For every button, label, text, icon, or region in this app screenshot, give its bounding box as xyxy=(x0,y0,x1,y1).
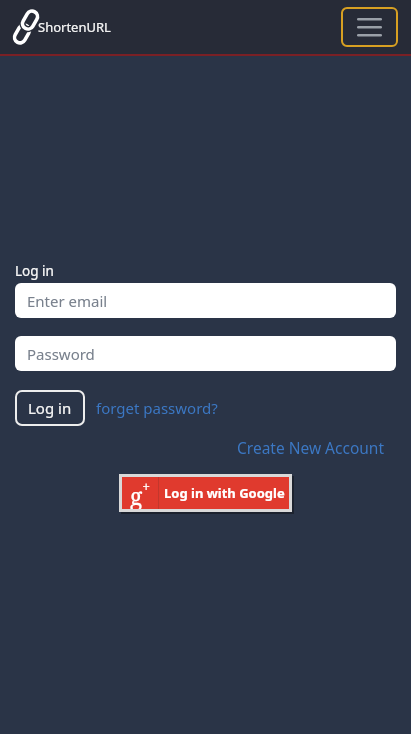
button[interactable]: Enter email xyxy=(15,283,396,318)
button[interactable]: g+ xyxy=(122,477,289,509)
button[interactable] xyxy=(341,7,398,47)
staticText: Log in xyxy=(28,398,72,418)
button[interactable]: Password xyxy=(15,336,396,371)
staticText: Enter email xyxy=(27,291,108,311)
button[interactable]: forget password? xyxy=(96,398,218,418)
button[interactable]: Create New Account xyxy=(237,437,385,458)
staticText: Log in with Google xyxy=(164,484,285,502)
staticText: Password xyxy=(27,344,95,364)
staticText: Log in xyxy=(15,262,54,280)
staticText: g+ xyxy=(130,477,151,509)
button[interactable]: Log in xyxy=(15,390,85,426)
staticText: ShortenURL xyxy=(38,18,111,36)
